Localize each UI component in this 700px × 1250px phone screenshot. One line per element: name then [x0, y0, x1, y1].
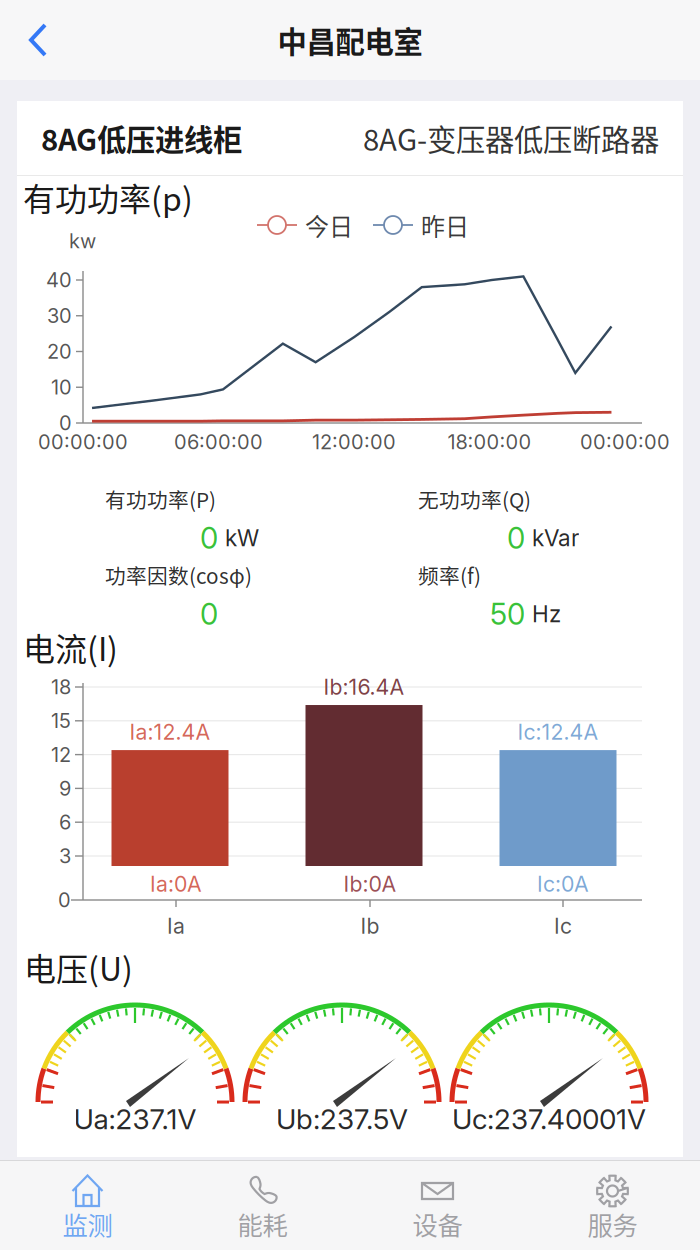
- staticText: Ia: [167, 913, 185, 939]
- staticText: 00:00:00: [38, 430, 128, 454]
- staticText: 40: [46, 268, 72, 292]
- staticText: Ua:237.1V: [73, 1102, 196, 1136]
- staticText: 30: [47, 304, 72, 328]
- staticText: 12: [51, 742, 71, 767]
- staticText: 中昌配电室: [277, 19, 422, 61]
- staticText: 8AG低压进线柜: [41, 117, 242, 159]
- staticText: 设备: [412, 1206, 462, 1242]
- staticText: kW: [225, 524, 259, 552]
- staticText: kw: [69, 229, 96, 253]
- staticText: 18: [51, 675, 71, 699]
- staticText: Hz: [532, 600, 561, 628]
- staticText: 能耗: [237, 1206, 287, 1242]
- button[interactable]: Energy: [175, 1161, 350, 1250]
- staticText: 50: [490, 596, 525, 632]
- staticText: 有功功率(P): [105, 484, 216, 514]
- staticText: Ib:16.4A: [323, 674, 404, 700]
- staticText: 20: [47, 339, 72, 364]
- staticText: Uc:237.40001V: [452, 1102, 646, 1136]
- staticText: Ic: [554, 913, 572, 939]
- staticText: 0: [58, 888, 71, 912]
- staticText: 15: [51, 709, 71, 733]
- staticText: 06:00:00: [174, 430, 263, 454]
- staticText: Ic:0A: [537, 871, 589, 897]
- staticText: 10: [51, 375, 72, 399]
- staticText: 有功功率(p): [23, 174, 193, 220]
- staticText: 0: [200, 596, 218, 632]
- staticText: 电压(U): [24, 944, 133, 990]
- button[interactable]: Services: [525, 1161, 700, 1250]
- staticText: Ib:0A: [343, 871, 396, 897]
- staticText: 3: [59, 844, 71, 868]
- staticText: 9: [59, 776, 71, 800]
- staticText: 今日: [305, 208, 353, 242]
- staticText: 电流(I): [23, 624, 118, 670]
- staticText: kVar: [532, 524, 579, 552]
- staticText: Ic:12.4A: [517, 719, 598, 745]
- staticText: 00:00:00: [580, 430, 670, 454]
- staticText: Ia:0A: [150, 871, 202, 897]
- staticText: 0: [200, 520, 218, 556]
- button[interactable]: Back: [0, 1, 88, 79]
- staticText: 18:00:00: [447, 430, 531, 454]
- staticText: Ub:237.5V: [276, 1102, 408, 1136]
- staticText: 频率(f): [418, 560, 481, 590]
- staticText: Ib: [360, 913, 379, 939]
- staticText: 8AG-变压器低压断路器: [363, 117, 659, 159]
- staticText: 0: [59, 411, 72, 435]
- staticText: 0: [507, 520, 525, 556]
- staticText: 功率因数(cosφ): [105, 560, 252, 590]
- staticText: 监测: [62, 1206, 112, 1242]
- button[interactable]: Monitoring: [0, 1161, 175, 1250]
- button[interactable]: Devices: [350, 1161, 525, 1250]
- staticText: 服务: [587, 1206, 637, 1242]
- staticText: 昨日: [421, 208, 469, 242]
- staticText: 6: [59, 810, 71, 834]
- staticText: 12:00:00: [312, 430, 396, 454]
- staticText: Ia:12.4A: [129, 719, 210, 745]
- staticText: 无功功率(Q): [418, 484, 531, 514]
